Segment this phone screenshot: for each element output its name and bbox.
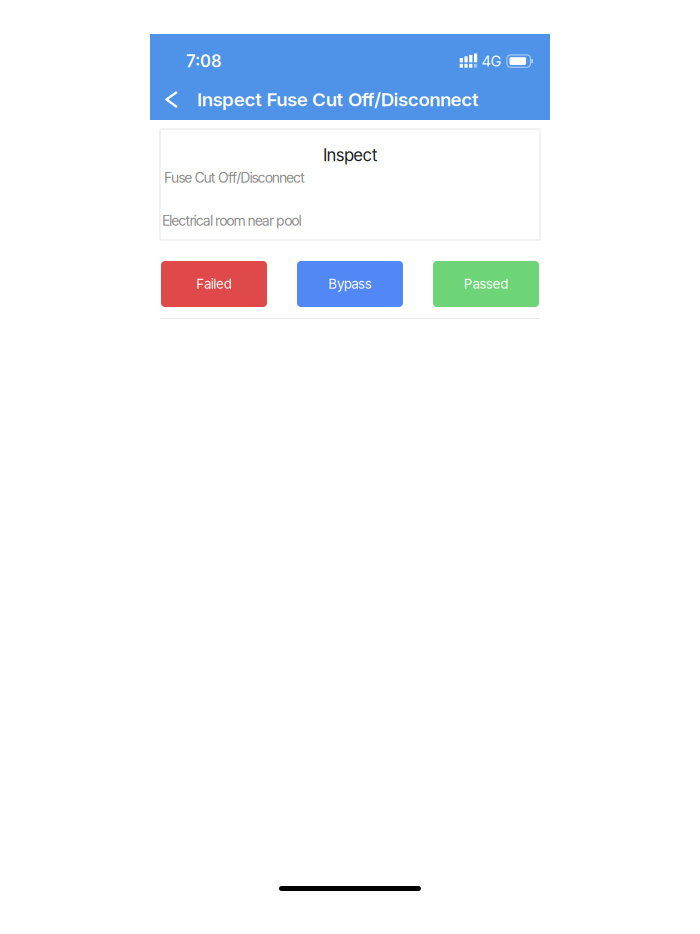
staticText: Failed (196, 276, 232, 292)
staticText: 4G (481, 52, 501, 70)
staticText: Fuse Cut Off/Disconnect (164, 169, 305, 186)
staticText: Inspect Fuse Cut Off/Disconnect (197, 88, 479, 111)
staticText: Bypass (328, 276, 372, 292)
button[interactable]: Failed (161, 261, 267, 307)
button[interactable]: Bypass (297, 261, 403, 307)
button[interactable]: Back (155, 81, 187, 118)
staticText: Inspect (323, 145, 377, 165)
button[interactable]: Passed (433, 261, 539, 307)
staticText: 7:08 (186, 51, 222, 71)
staticText: Electrical room near pool (162, 212, 301, 229)
staticText: Passed (464, 276, 508, 292)
